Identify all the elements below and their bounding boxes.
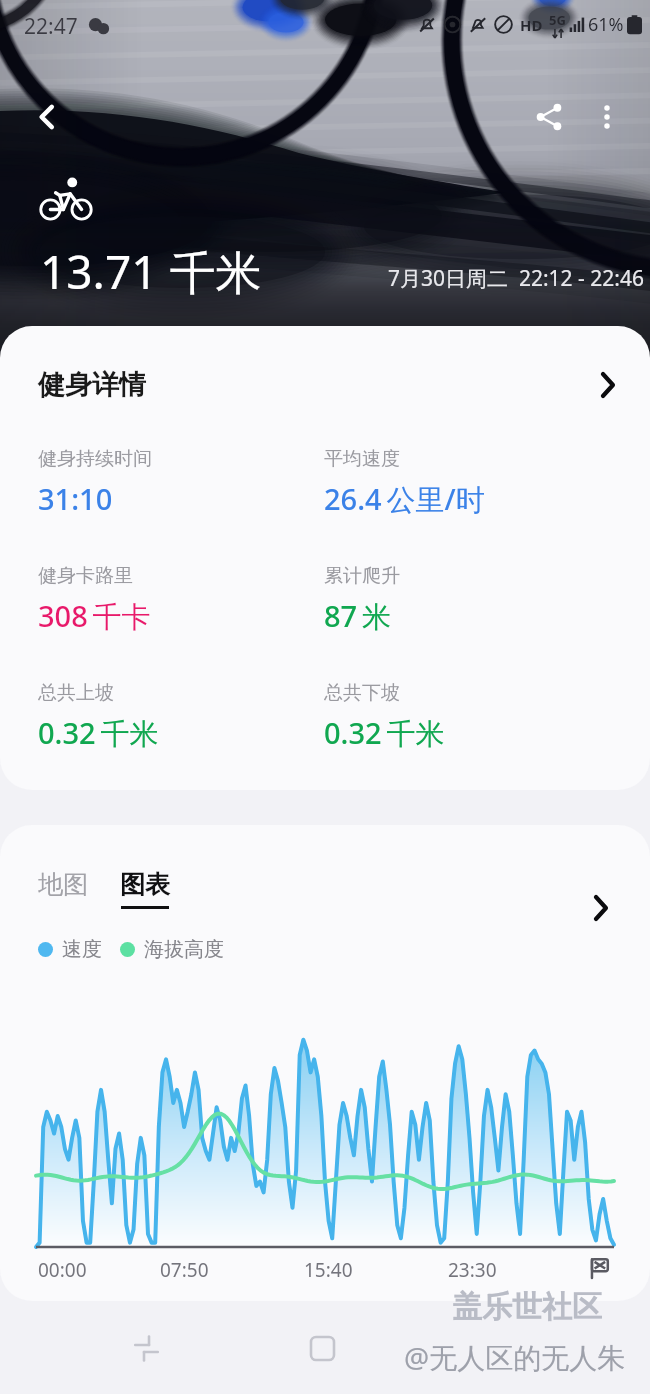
button[interactable]: More options [578,88,636,146]
button[interactable]: Recent apps [118,1320,174,1376]
staticText: 地图 [38,869,88,900]
staticText: 健身详情 [38,368,146,402]
staticText: 22:47 [24,12,78,41]
staticText: 0.32 千米 [324,713,445,753]
staticText: 盖乐世社区 [452,1288,602,1326]
staticText: 平均速度 [324,447,400,471]
button[interactable]: Back [18,88,76,146]
staticText: @无人区的无人朱 [404,1338,626,1376]
button[interactable]: Share [520,88,578,146]
staticText: HD [520,15,543,35]
button[interactable]: 健身详情 [0,326,650,444]
staticText: 总共上坡 [38,681,114,705]
button[interactable]: 图表 [120,869,170,909]
staticText: 23:30 [448,1257,497,1283]
staticText: 31:10 [38,479,113,518]
staticText: 07:50 [160,1257,209,1283]
staticText: 总共下坡 [324,681,400,705]
staticText: 61% [588,12,624,37]
staticText: 0.32 千米 [38,713,159,753]
staticText: 海拔高度 [144,937,224,962]
button[interactable]: 地图 [38,869,88,900]
staticText: 26.4 公里/时 [324,479,485,519]
staticText: 7月30日周二 22:12 - 22:46 [388,264,644,293]
staticText: 健身持续时间 [38,447,152,471]
staticText: 00:00 [38,1257,87,1283]
staticText: 速度 [62,937,102,962]
staticText: 87 米 [324,596,391,636]
staticText: 健身卡路里 [38,564,133,588]
staticText: 累计爬升 [324,564,400,588]
staticText: 5G [549,11,566,29]
staticText: 13.71 千米 [40,240,262,303]
button[interactable]: Home [294,1320,350,1376]
button[interactable]: Open chart details [585,893,615,923]
staticText: 308 千卡 [38,596,151,636]
staticText: 15:40 [304,1257,353,1283]
staticText: 图表 [120,869,170,900]
